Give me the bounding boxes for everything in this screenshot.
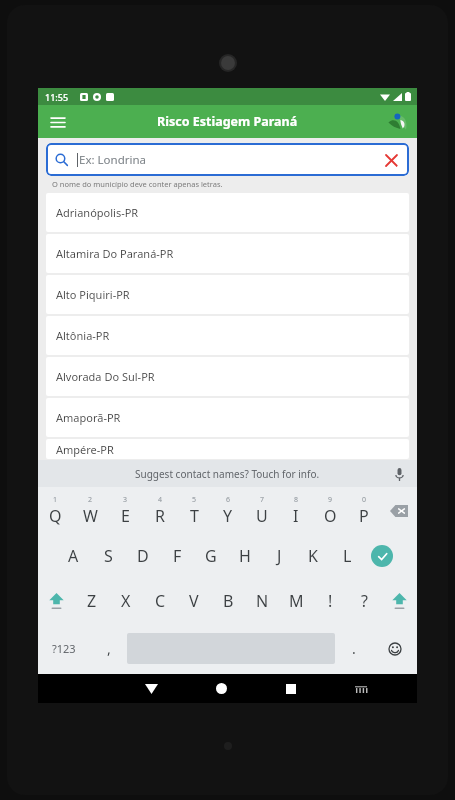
button[interactable]: ?: [347, 578, 381, 623]
staticText: 7: [260, 495, 265, 505]
button[interactable]: Shift: [38, 578, 75, 623]
staticText: 6: [226, 495, 231, 505]
button[interactable]: Clear search: [382, 151, 400, 169]
staticText: Amaporã-PR: [56, 410, 121, 425]
staticText: N: [256, 590, 269, 612]
button[interactable]: Emoji: [372, 623, 417, 674]
button[interactable]: Voice input: [389, 464, 409, 484]
staticText: Z: [87, 590, 97, 612]
button[interactable]: X: [109, 578, 143, 623]
staticText: 0: [362, 495, 367, 505]
staticText: X: [121, 590, 131, 612]
staticText: F: [173, 545, 182, 567]
button[interactable]: Alto Piquiri-PR: [46, 275, 409, 314]
button[interactable]: Alvorada Do Sul-PR: [46, 357, 409, 396]
button[interactable]: F: [160, 534, 194, 578]
staticText: J: [277, 545, 282, 567]
staticText: Altamira Do Paraná-PR: [56, 246, 174, 261]
staticText: Adrianópolis-PR: [56, 205, 139, 220]
staticText: P: [359, 505, 369, 527]
button[interactable]: Menu: [44, 108, 72, 136]
staticText: K: [308, 545, 318, 567]
staticText: 11:55: [45, 91, 69, 103]
button[interactable]: 5: [177, 487, 211, 534]
button[interactable]: M: [279, 578, 313, 623]
button[interactable]: Back: [116, 674, 186, 703]
button[interactable]: V: [177, 578, 211, 623]
staticText: A: [68, 545, 79, 567]
staticText: M: [289, 590, 304, 612]
button[interactable]: J: [262, 534, 296, 578]
staticText: L: [343, 545, 352, 567]
staticText: 5: [192, 495, 197, 505]
button[interactable]: G: [194, 534, 228, 578]
staticText: H: [239, 545, 251, 567]
button[interactable]: C: [143, 578, 177, 623]
button[interactable]: Altamira Do Paraná-PR: [46, 234, 409, 273]
staticText: Y: [223, 505, 233, 527]
button[interactable]: Backspace: [381, 487, 417, 534]
button[interactable]: Shift: [381, 578, 417, 623]
button[interactable]: !: [313, 578, 347, 623]
staticText: ,: [107, 639, 111, 658]
staticText: Alto Piquiri-PR: [56, 287, 130, 302]
staticText: Suggest contact names? Touch for info.: [135, 467, 320, 481]
staticText: 4: [158, 495, 163, 505]
staticText: Q: [49, 505, 62, 527]
staticText: W: [83, 505, 98, 527]
button[interactable]: A: [56, 534, 91, 578]
button[interactable]: L: [330, 534, 364, 578]
button[interactable]: Ampére-PR: [46, 439, 409, 459]
staticText: ?123: [52, 641, 76, 656]
staticText: 3: [123, 495, 128, 505]
staticText: U: [256, 505, 268, 527]
staticText: Altônia-PR: [56, 328, 110, 343]
staticText: Ampére-PR: [56, 442, 114, 457]
staticText: D: [137, 545, 149, 567]
button[interactable]: Z: [75, 578, 109, 623]
button[interactable]: Home: [186, 674, 256, 703]
staticText: O nome do município deve conter apenas l…: [52, 179, 223, 189]
button[interactable]: B: [211, 578, 245, 623]
staticText: O: [324, 505, 337, 527]
button[interactable]: Enter: [364, 534, 400, 578]
button[interactable]: ,: [90, 623, 127, 674]
staticText: 9: [328, 495, 333, 505]
staticText: !: [328, 590, 333, 612]
staticText: G: [205, 545, 217, 567]
button[interactable]: 0: [347, 487, 381, 534]
staticText: V: [189, 590, 199, 612]
staticText: C: [155, 590, 166, 612]
staticText: Alvorada Do Sul-PR: [56, 369, 155, 384]
button[interactable]: Altônia-PR: [46, 316, 409, 355]
staticText: B: [223, 590, 234, 612]
button[interactable]: K: [296, 534, 330, 578]
button[interactable]: 8: [279, 487, 313, 534]
button[interactable]: 9: [313, 487, 347, 534]
button[interactable]: 3: [108, 487, 143, 534]
staticText: 8: [294, 495, 299, 505]
button[interactable]: N: [245, 578, 279, 623]
button[interactable]: Keyboard switcher: [326, 674, 396, 703]
button[interactable]: Amaporã-PR: [46, 398, 409, 437]
button[interactable]: 4: [143, 487, 177, 534]
button[interactable]: 2: [73, 487, 108, 534]
staticText: 1: [53, 495, 58, 505]
button[interactable]: S: [91, 534, 126, 578]
button[interactable]: Recents: [256, 674, 326, 703]
button[interactable]: 7: [245, 487, 279, 534]
staticText: R: [155, 505, 165, 527]
button[interactable]: Adrianópolis-PR: [46, 193, 409, 232]
button[interactable]: .: [335, 623, 372, 674]
button[interactable]: Suggest contact names? Touch for info.: [38, 460, 417, 487]
button[interactable]: H: [228, 534, 262, 578]
button[interactable]: Ex: Londrina: [46, 143, 409, 176]
button[interactable]: 1: [38, 487, 73, 534]
button[interactable]: D: [126, 534, 160, 578]
button[interactable]: 6: [211, 487, 245, 534]
staticText: S: [104, 545, 113, 567]
button[interactable]: ?123: [38, 623, 90, 674]
button[interactable]: App logo: [385, 109, 411, 135]
staticText: T: [190, 505, 199, 527]
